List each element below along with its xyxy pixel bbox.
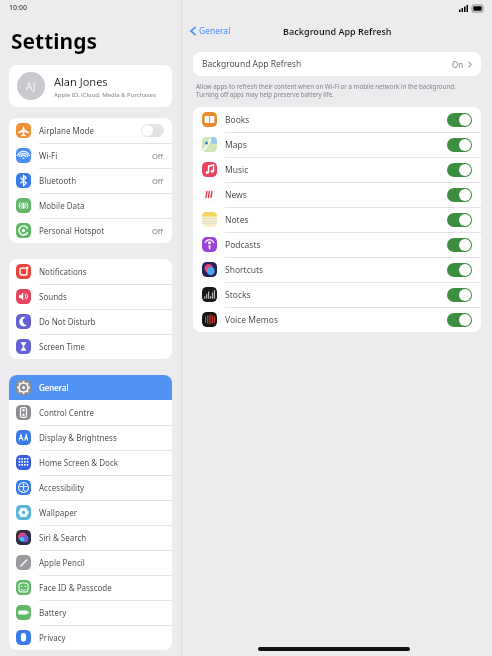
staticText: Settings [11,27,98,56]
button[interactable]: Sounds [9,284,172,309]
staticText: Notes [225,214,249,226]
button[interactable]: Home Screen & Dock [9,450,172,475]
staticText: Screen Time [39,341,85,352]
button[interactable]: Toggle on [447,313,472,327]
button[interactable]: Face ID & Passcode [9,575,172,600]
staticText: Shortcuts [225,264,264,276]
staticText: Apple ID, iCloud, Media & Purchases [54,91,156,99]
button[interactable]: Toggle on [447,213,472,227]
staticText: Books [225,114,250,126]
button[interactable]: Stocks [193,282,481,307]
button[interactable]: Accessibility [9,475,172,500]
staticText: News [225,189,247,201]
button[interactable]: Toggle on [447,163,472,177]
staticText: Allow apps to refresh their content when… [196,82,456,90]
staticText: Off [152,151,164,161]
staticText: Do Not Disturb [39,316,96,327]
button[interactable]: Music [193,157,481,182]
staticText: Control Centre [39,407,94,418]
staticText: Display & Brightness [39,432,117,443]
button[interactable]: Screen Time [9,334,172,359]
staticText: 10:00 [9,3,27,13]
button[interactable]: Airplane Mode [9,118,172,143]
button[interactable]: Mobile Data [9,193,172,218]
staticText: Off [152,176,164,186]
staticText: On [452,59,464,70]
button[interactable]: Wi-Fi [9,143,172,168]
button[interactable]: Toggle on [447,188,472,202]
button[interactable]: Shortcuts [193,257,481,282]
staticText: Mobile Data [39,200,85,211]
button[interactable]: Battery [9,600,172,625]
staticText: Wi-Fi [39,150,58,161]
staticText: Music [225,164,249,176]
button[interactable]: General [188,22,233,40]
staticText: Maps [225,139,247,151]
staticText: Apple Pencil [39,557,85,568]
staticText: General [199,25,231,37]
staticText: Background App Refresh [283,25,392,37]
button[interactable]: Do Not Disturb [9,309,172,334]
staticText: Home Screen & Dock [39,457,118,468]
staticText: Sounds [39,291,67,302]
staticText: Personal Hotspot [39,225,105,236]
button[interactable]: Wallpaper [9,500,172,525]
button[interactable]: News [193,182,481,207]
staticText: Wallpaper [39,507,78,518]
button[interactable]: Siri & Search [9,525,172,550]
button[interactable]: Toggle on [447,263,472,277]
staticText: Battery [39,607,67,618]
staticText: Face ID & Passcode [39,582,112,593]
button[interactable]: Podcasts [193,232,481,257]
button[interactable]: AJ [9,65,172,107]
button[interactable]: Apple Pencil [9,550,172,575]
staticText: Turning off apps may help preserve batte… [196,90,334,98]
staticText: Stocks [225,289,251,301]
button[interactable]: Background App Refresh [193,52,481,76]
button[interactable]: Toggle on [447,238,472,252]
staticText: Privacy [39,632,66,643]
button[interactable]: Personal Hotspot [9,218,172,243]
button[interactable]: Bluetooth [9,168,172,193]
button[interactable]: Books [193,107,481,132]
staticText: AJ [26,79,36,93]
button[interactable]: Privacy [9,625,172,650]
staticText: Accessibility [39,482,85,493]
staticText: Podcasts [225,239,261,251]
staticText: General [39,382,69,393]
staticText: Airplane Mode [39,125,95,136]
button[interactable]: General [9,375,172,400]
button[interactable]: Notifications [9,259,172,284]
button[interactable]: Toggle on [447,288,472,302]
button[interactable]: Voice Memos [193,307,481,332]
button[interactable]: Notes [193,207,481,232]
staticText: Alan Jones [54,74,108,89]
staticText: Background App Refresh [202,58,302,70]
button[interactable]: Toggle off [141,124,164,137]
staticText: Off [152,226,164,236]
button[interactable]: Control Centre [9,400,172,425]
button[interactable]: Toggle on [447,138,472,152]
staticText: Notifications [39,266,87,277]
staticText: Voice Memos [225,314,279,326]
button[interactable]: Toggle on [447,113,472,127]
button[interactable]: Maps [193,132,481,157]
button[interactable]: Display & Brightness [9,425,172,450]
staticText: Bluetooth [39,175,77,186]
staticText: Siri & Search [39,532,87,543]
